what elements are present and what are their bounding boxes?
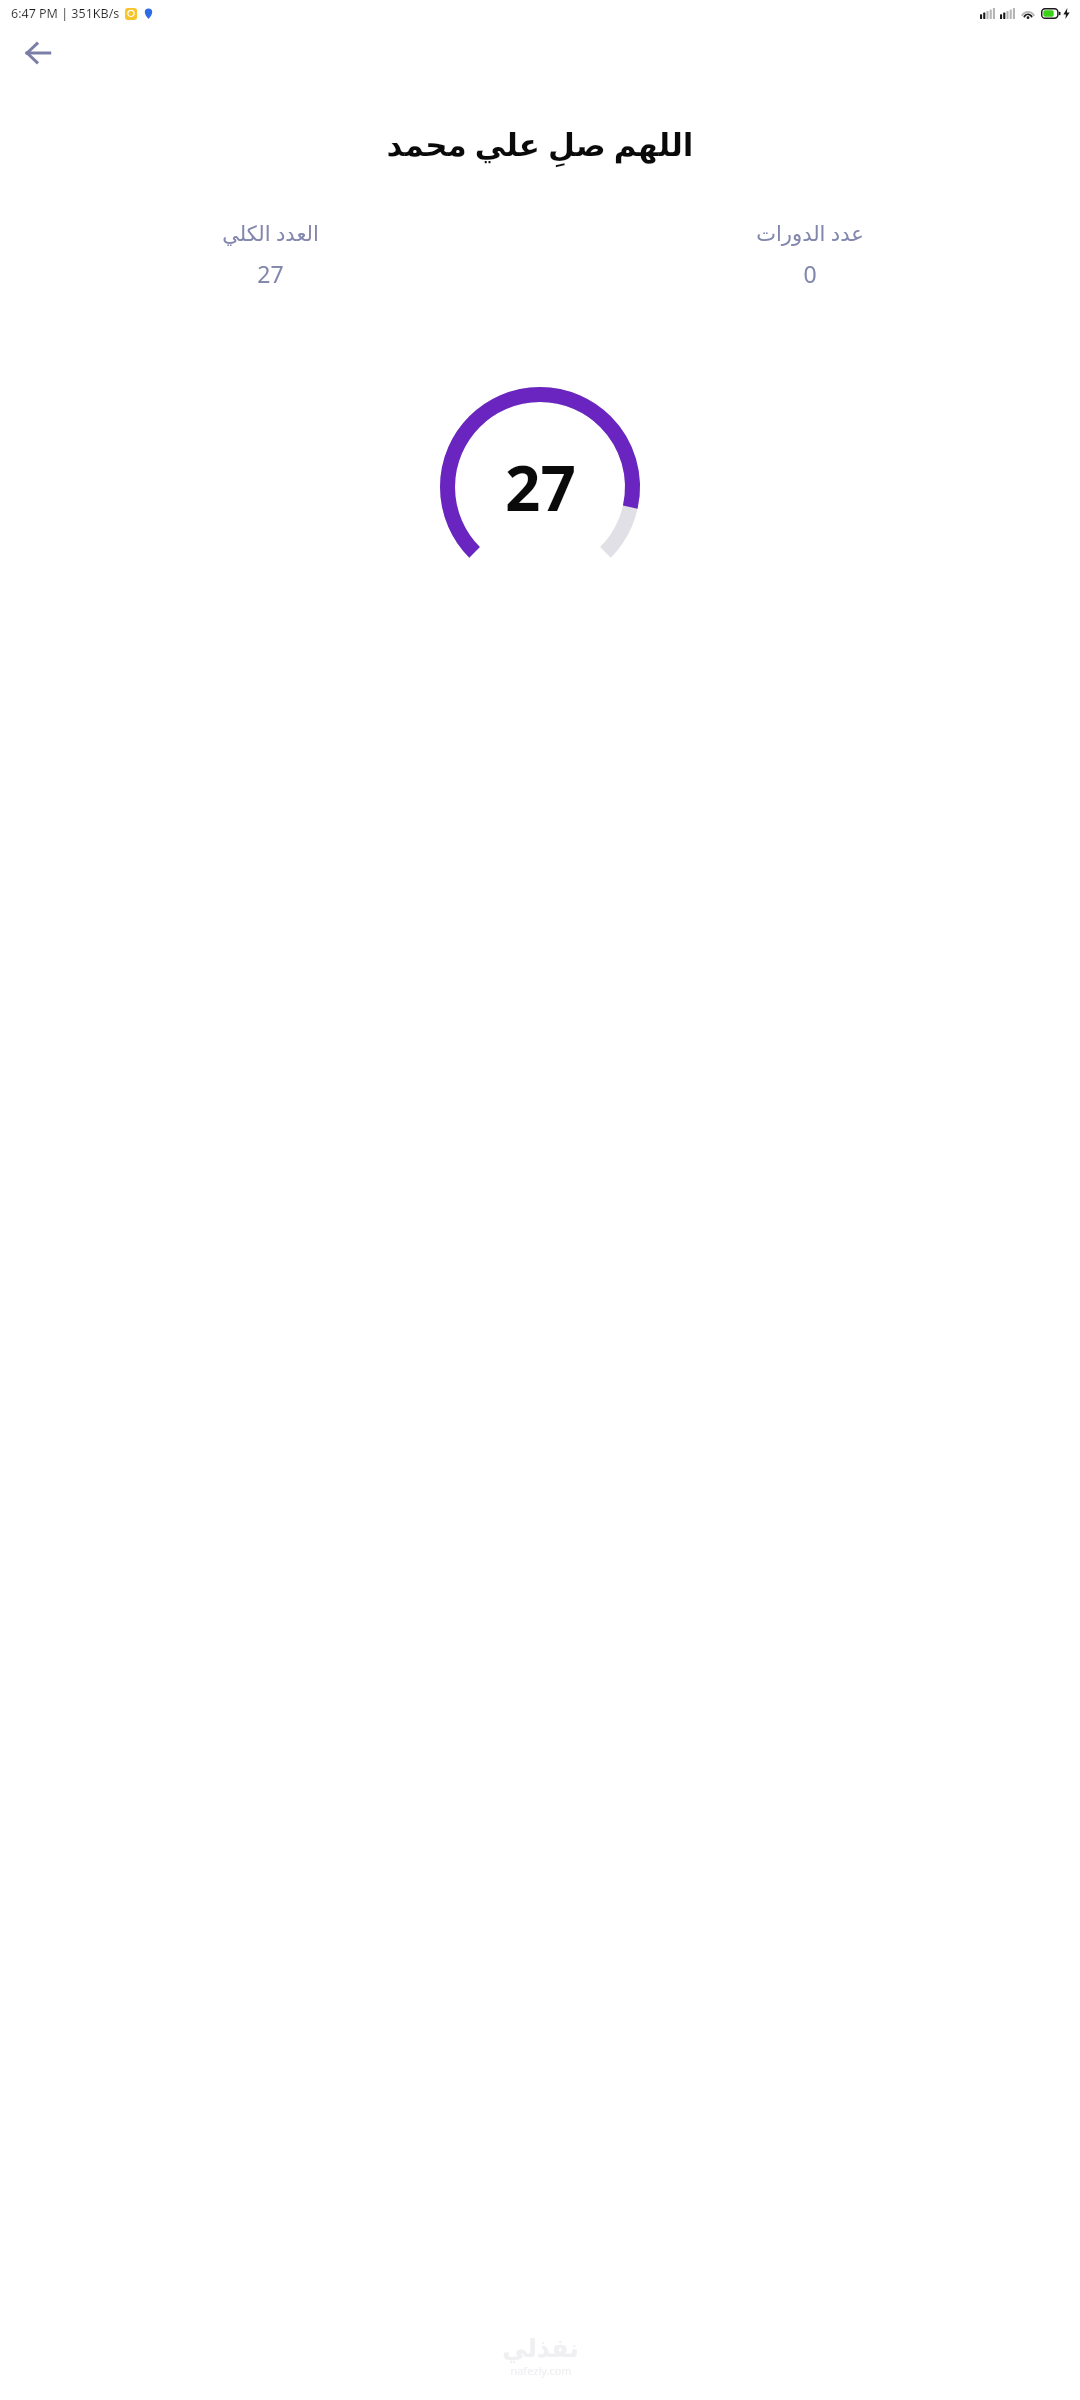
staticText: 6:47 PM | 351KB/s	[11, 5, 120, 22]
button[interactable]: العدد الكلي	[0, 217, 540, 291]
button[interactable]: Back	[14, 29, 62, 77]
staticText: العدد الكلي	[222, 219, 319, 248]
button[interactable]: 27	[440, 387, 640, 587]
staticText: 27	[257, 258, 284, 289]
staticText: نفذلي	[502, 2334, 579, 2363]
staticText: عدد الدورات	[756, 219, 864, 248]
staticText: اللهم صلِ علي محمد	[0, 123, 1080, 165]
staticText: 0	[803, 258, 817, 289]
button[interactable]: عدد الدورات	[540, 217, 1080, 291]
staticText: nafezly.com	[510, 2363, 572, 2378]
staticText: 27	[505, 445, 576, 529]
